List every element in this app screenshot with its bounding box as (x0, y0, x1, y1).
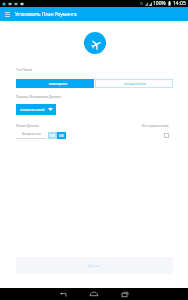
button[interactable]: предоплата (95, 79, 173, 88)
staticText: помесячный (20, 107, 45, 112)
staticText: Период Обновления Данных (16, 95, 61, 99)
button[interactable]: MB (48, 132, 57, 139)
staticText: 14:05 (173, 0, 186, 7)
button[interactable]: GB (57, 132, 66, 139)
staticText: Введите зна (22, 132, 41, 136)
staticText: повторять (49, 81, 68, 86)
button[interactable]: Open navigation menu (0, 7, 14, 21)
staticText: 100% (153, 0, 166, 7)
button[interactable]: Flight (84, 32, 106, 54)
staticText: Лимит Данных (16, 124, 40, 128)
staticText: GB (59, 133, 64, 138)
button[interactable]: помесячный (16, 104, 56, 115)
staticText: MB (50, 133, 56, 138)
button[interactable]: Введите зна (16, 132, 46, 139)
button[interactable]: Recent apps (114, 288, 136, 300)
staticText: Без ограничений (142, 124, 169, 128)
button[interactable]: Back (52, 288, 74, 300)
button[interactable]: Home (83, 288, 105, 300)
staticText: Далее (88, 263, 101, 269)
staticText: предоплата (124, 81, 147, 86)
button[interactable]: повторять (16, 79, 94, 88)
staticText: Установить План Роуминга (15, 11, 77, 17)
button[interactable]: Unlimited data (164, 133, 169, 138)
staticText: Тип Плана (16, 68, 33, 72)
